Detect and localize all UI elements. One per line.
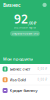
staticText: 0,00 ₽: [37, 67, 47, 71]
button[interactable]: Кредит бизнесу: [0, 85, 50, 96]
staticText: Мои продукты: [3, 56, 33, 61]
staticText: 0,00 ₽: [37, 78, 47, 81]
staticText: ,00 ₽: [28, 20, 36, 26]
staticText: Бизнес счёт: [10, 66, 31, 72]
staticText: Кредит бизнесу: [10, 88, 38, 93]
staticText: Бизнес: [3, 1, 21, 8]
button[interactable]: Бизнес счёт: [0, 64, 50, 75]
button[interactable]: Visa Gold: [0, 75, 50, 85]
staticText: Открыть новый счёт: [11, 32, 38, 35]
staticText: 92: [14, 11, 28, 27]
staticText: Все счета и карты: [14, 26, 36, 29]
button[interactable]: Profile: [42, 2, 47, 7]
button[interactable]: Бизнес: [3, 0, 21, 9]
staticText: Visa Gold: [10, 77, 26, 82]
button[interactable]: Открыть новый счёт: [10, 31, 40, 36]
